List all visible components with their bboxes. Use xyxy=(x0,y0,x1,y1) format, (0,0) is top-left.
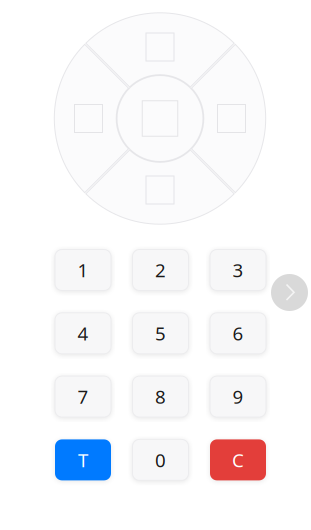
button[interactable]: 5 xyxy=(132,313,188,354)
button[interactable]: 4 xyxy=(55,313,111,354)
button[interactable]: 8 xyxy=(132,376,188,417)
staticText: 3 xyxy=(232,258,243,282)
staticText: 8 xyxy=(155,384,166,409)
staticText: 0 xyxy=(155,447,166,472)
button[interactable]: T xyxy=(55,439,111,480)
staticText: 5 xyxy=(155,321,166,346)
button[interactable]: 7 xyxy=(55,376,111,417)
button[interactable]: 1 xyxy=(55,249,111,290)
staticText: 4 xyxy=(77,321,88,346)
button[interactable]: 6 xyxy=(210,313,266,354)
button[interactable]: 3 xyxy=(210,249,266,290)
button[interactable]: Next xyxy=(271,274,308,311)
staticText: 7 xyxy=(77,384,88,409)
staticText: 2 xyxy=(155,258,166,282)
button[interactable]: 2 xyxy=(132,249,188,290)
staticText: T xyxy=(78,447,88,472)
button[interactable]: C xyxy=(210,439,266,480)
button[interactable]: 9 xyxy=(210,376,266,417)
button[interactable]: 0 xyxy=(132,439,188,480)
staticText: 1 xyxy=(77,258,88,282)
staticText: 9 xyxy=(232,384,243,409)
staticText: C xyxy=(232,447,244,472)
staticText: 6 xyxy=(232,321,243,346)
